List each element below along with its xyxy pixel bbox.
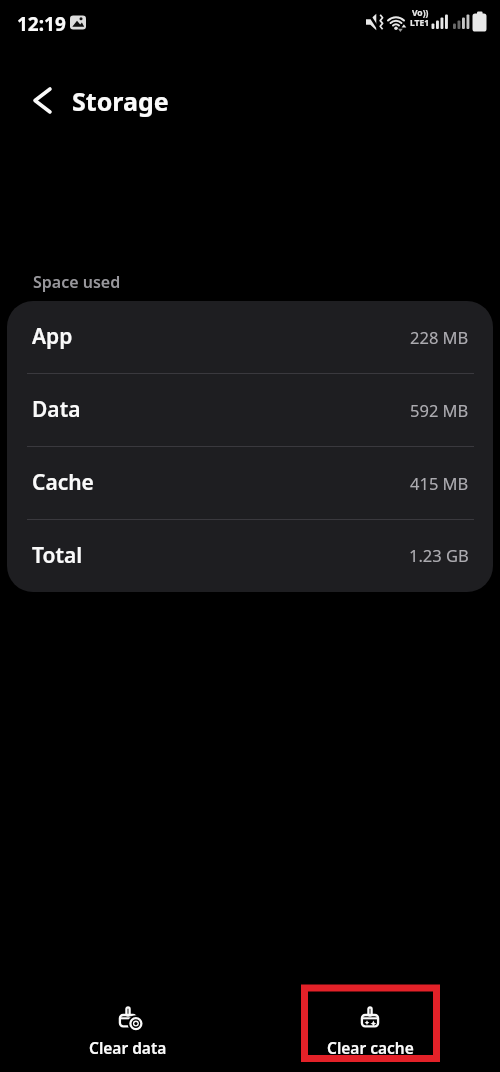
staticText: 415 MB [410, 472, 469, 494]
staticText: 592 MB [410, 399, 469, 421]
staticText: Cache [32, 468, 94, 497]
button[interactable]: Total [7, 520, 493, 592]
button[interactable]: Cache [7, 447, 493, 520]
staticText: Total [32, 541, 83, 570]
button[interactable] [23, 78, 63, 122]
staticText: Data [32, 395, 81, 424]
staticText: Storage [72, 84, 169, 118]
button[interactable]: App [7, 301, 493, 374]
staticText: Clear data [89, 1037, 167, 1058]
staticText: 12:19 [17, 11, 66, 37]
staticText: LTE1 [410, 17, 430, 29]
button[interactable]: Data [7, 374, 493, 447]
button[interactable]: Clear cache [290, 1003, 450, 1058]
staticText: Space used [33, 271, 121, 293]
staticText: 228 MB [410, 326, 469, 348]
staticText: App [32, 322, 73, 351]
staticText: Vo)) [412, 7, 429, 19]
staticText: Clear cache [327, 1037, 414, 1058]
button[interactable]: Clear data [48, 1003, 208, 1058]
staticText: 1.23 GB [409, 544, 469, 566]
